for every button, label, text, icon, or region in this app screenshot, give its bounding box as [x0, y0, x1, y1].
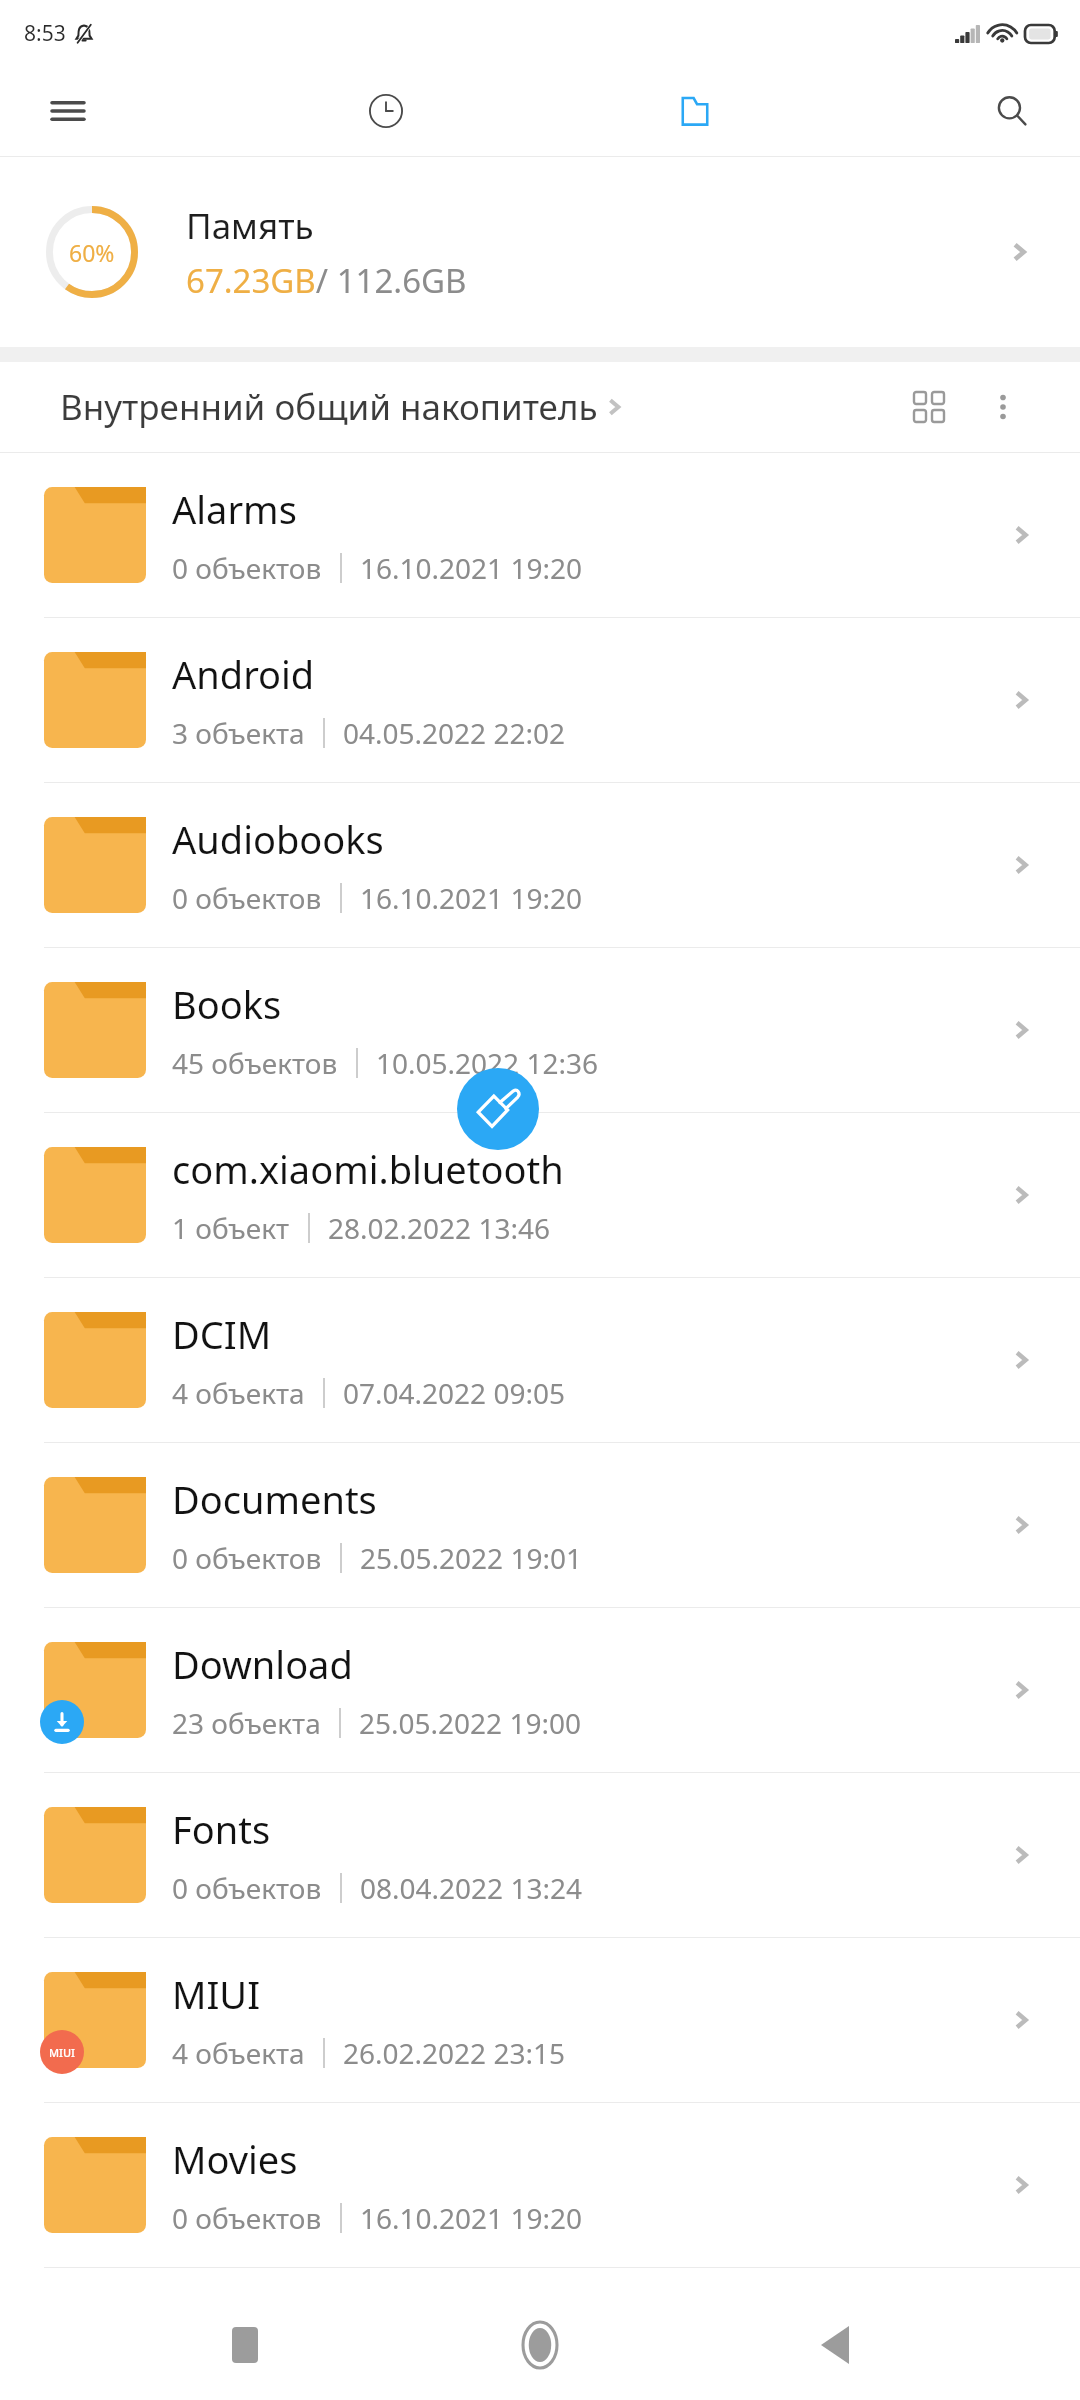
button[interactable]: Внутренний общий накопитель — [60, 383, 626, 431]
staticText: 0 объектов — [172, 1539, 322, 1577]
button[interactable]: Menu — [0, 66, 136, 156]
staticText: 08.04.2022 13:24 — [360, 1869, 582, 1907]
staticText: 60% — [69, 237, 115, 268]
staticText: 3 объекта — [172, 714, 305, 752]
button[interactable]: Grid view — [892, 370, 966, 444]
staticText: 45 объектов — [172, 1044, 338, 1082]
staticText: Alarms — [172, 483, 297, 535]
staticText: 10.05.2022 12:36 — [376, 1044, 598, 1082]
staticText: 67.23GB/ 112.6GB — [186, 258, 467, 303]
staticText: 16.10.2021 19:20 — [360, 879, 582, 917]
staticText: Movies — [172, 2133, 298, 2185]
button[interactable]: Download — [0, 1608, 1080, 1772]
button[interactable]: Fonts — [0, 1773, 1080, 1937]
staticText: Fonts — [172, 1803, 271, 1855]
button[interactable]: 60% — [0, 157, 1080, 347]
button[interactable]: Files — [635, 66, 755, 156]
staticText: 25.05.2022 19:01 — [360, 1539, 582, 1577]
staticText: Память — [186, 202, 314, 250]
staticText: Download — [172, 1638, 353, 1690]
button[interactable]: More options — [966, 370, 1040, 444]
staticText: MIUI — [172, 1968, 261, 2020]
staticText: 28.02.2022 13:46 — [328, 1209, 550, 1247]
button[interactable]: com.xiaomi.bluetooth — [0, 1113, 1080, 1277]
staticText: DCIM — [172, 1308, 272, 1360]
staticText: 16.10.2021 19:20 — [360, 2199, 582, 2237]
button[interactable]: Home — [490, 2295, 590, 2395]
staticText: 1 объект — [172, 1209, 290, 1247]
button[interactable]: Alarms — [0, 453, 1080, 617]
staticText: 26.02.2022 23:15 — [343, 2034, 565, 2072]
staticText: 25.05.2022 19:00 — [359, 1704, 581, 1742]
staticText: MIUI — [49, 2045, 76, 2060]
staticText: 07.04.2022 09:05 — [343, 1374, 565, 1412]
button[interactable]: DCIM — [0, 1278, 1080, 1442]
button[interactable]: Clean storage — [457, 1068, 539, 1150]
button[interactable]: Android — [0, 618, 1080, 782]
staticText: 4 объекта — [172, 1374, 305, 1412]
staticText: 0 объектов — [172, 1869, 322, 1907]
button[interactable]: Movies — [0, 2103, 1080, 2267]
staticText: 04.05.2022 22:02 — [343, 714, 565, 752]
staticText: 23 объекта — [172, 1704, 321, 1742]
staticText: Audiobooks — [172, 813, 384, 865]
button[interactable]: Audiobooks — [0, 783, 1080, 947]
staticText: 4 объекта — [172, 2034, 305, 2072]
staticText: 0 объектов — [172, 2199, 322, 2237]
button[interactable]: Back — [785, 2295, 885, 2395]
staticText: Documents — [172, 1473, 377, 1525]
staticText: com.xiaomi.bluetooth — [172, 1143, 564, 1195]
button[interactable]: MIUI — [0, 1938, 1080, 2102]
staticText: 8:53 — [24, 19, 66, 48]
staticText: 0 объектов — [172, 879, 322, 917]
button[interactable]: Documents — [0, 1443, 1080, 1607]
staticText: 0 объектов — [172, 549, 322, 587]
button[interactable]: Recent files — [326, 66, 446, 156]
staticText: Books — [172, 978, 282, 1030]
staticText: Android — [172, 648, 315, 700]
button[interactable]: Recents — [195, 2295, 295, 2395]
button[interactable]: Search — [944, 66, 1080, 156]
staticText: Внутренний общий накопитель — [60, 383, 598, 431]
button[interactable]: Books — [0, 948, 1080, 1112]
staticText: 16.10.2021 19:20 — [360, 549, 582, 587]
